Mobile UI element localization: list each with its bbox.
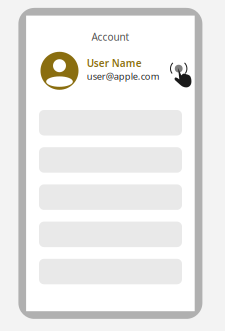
staticText: user@apple.com: [87, 70, 160, 82]
button[interactable]: Profile photo: [40, 52, 78, 90]
staticText: Account: [91, 30, 129, 44]
staticText: User Name: [87, 56, 142, 70]
